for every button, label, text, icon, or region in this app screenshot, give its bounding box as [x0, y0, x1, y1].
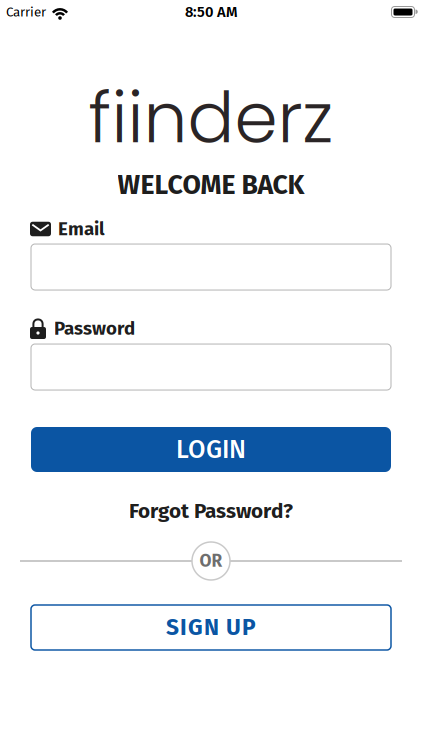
staticText: Email: [58, 218, 105, 240]
button[interactable]: SIGN UP: [31, 605, 391, 650]
staticText: LOGIN: [176, 434, 246, 465]
staticText: OR: [199, 551, 222, 571]
button[interactable]: [31, 344, 391, 390]
staticText: WELCOME BACK: [117, 169, 304, 201]
staticText: fiinderz: [88, 69, 333, 167]
staticText: SIGN UP: [166, 614, 256, 641]
staticText: Password: [54, 317, 135, 340]
button[interactable]: [31, 244, 391, 290]
staticText: Carrier: [6, 4, 46, 20]
staticText: Forgot Password?: [129, 499, 293, 523]
staticText: 8:50 AM: [185, 3, 237, 21]
button[interactable]: LOGIN: [31, 427, 391, 472]
button[interactable]: Forgot Password?: [129, 499, 293, 523]
